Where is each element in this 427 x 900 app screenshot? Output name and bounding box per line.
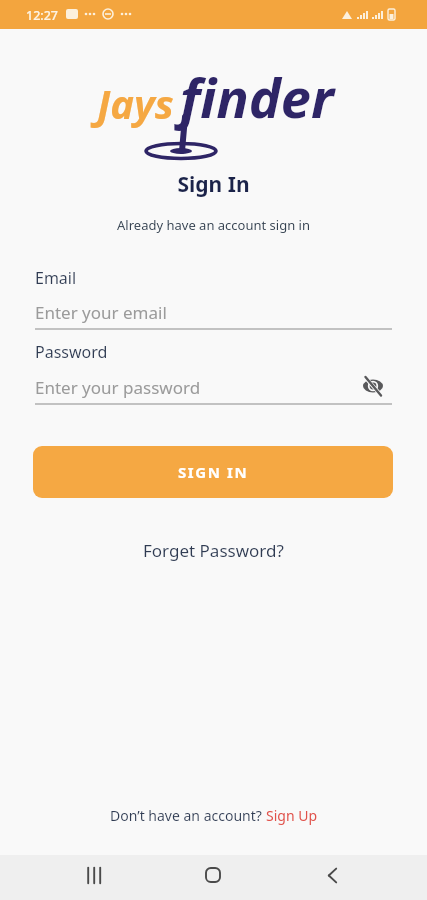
- staticText: SIGN IN: [178, 462, 249, 482]
- staticText: Jays: [97, 76, 174, 130]
- button[interactable]: [312, 855, 352, 895]
- button[interactable]: Forget Password?: [143, 539, 284, 562]
- button[interactable]: Enter your email: [33, 296, 393, 330]
- staticText: Don’t have an account?: [110, 806, 266, 825]
- staticText: Enter your password: [35, 376, 201, 399]
- staticText: Sign In: [0, 170, 427, 199]
- staticText: Sign Up: [266, 806, 318, 825]
- staticText: 12:27: [26, 7, 59, 24]
- staticText: Enter your email: [35, 301, 167, 324]
- button[interactable]: [358, 372, 388, 400]
- staticText: finder: [180, 60, 334, 134]
- staticText: Password: [35, 341, 108, 363]
- staticText: Email: [35, 267, 77, 289]
- staticText: Forget Password?: [143, 539, 284, 562]
- button[interactable]: [193, 855, 233, 895]
- button[interactable]: Enter your password: [33, 371, 393, 405]
- staticText: Already have an account sign in: [0, 216, 427, 234]
- button[interactable]: [74, 855, 114, 895]
- button[interactable]: SIGN IN: [33, 446, 393, 498]
- button[interactable]: Sign Up: [266, 806, 318, 825]
